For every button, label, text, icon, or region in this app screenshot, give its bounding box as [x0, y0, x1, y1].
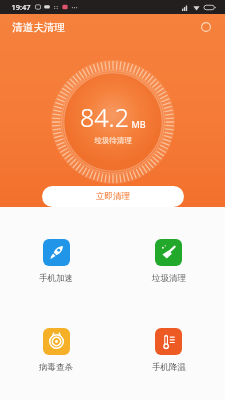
button[interactable]: 手机加速	[0, 237, 112, 286]
staticText: 清道夫清理	[12, 21, 65, 34]
staticText: MB	[131, 118, 146, 130]
staticText: 立即清理	[96, 191, 130, 202]
staticText: 手机加速	[39, 273, 73, 284]
staticText: 84.2	[80, 100, 129, 134]
staticText: 19:47	[11, 2, 31, 12]
staticText: 垃圾待清理	[94, 136, 132, 145]
button[interactable]: 垃圾清理	[112, 237, 225, 286]
button[interactable]: 立即清理	[42, 186, 184, 207]
button[interactable]: 设置	[199, 20, 213, 34]
staticText: 垃圾清理	[152, 273, 186, 284]
button[interactable]: 病毒查杀	[0, 326, 112, 375]
button[interactable]: 手机降温	[112, 326, 225, 375]
staticText: 病毒查杀	[39, 362, 73, 373]
staticText: 手机降温	[152, 362, 186, 373]
